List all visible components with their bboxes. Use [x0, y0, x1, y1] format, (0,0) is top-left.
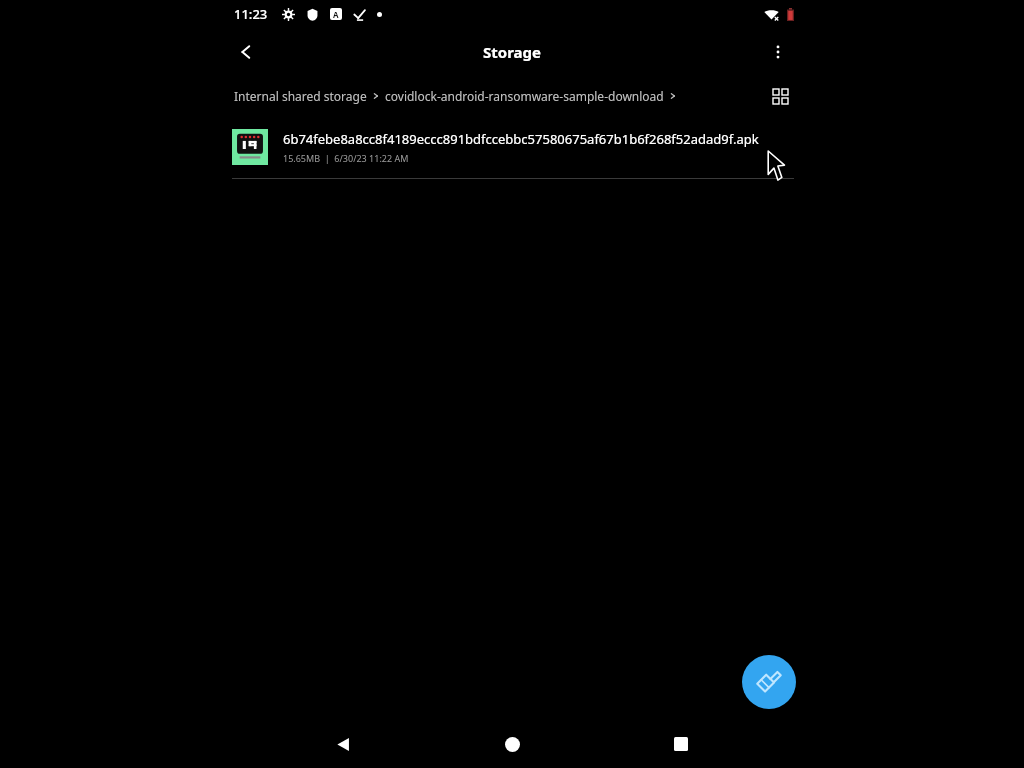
button[interactable]: 6b74febe8a8cc8f4189eccc891bdfccebbc57580… — [0, 116, 1024, 178]
button[interactable]: Home — [489, 721, 535, 767]
staticText: A — [333, 9, 339, 20]
button[interactable]: Clean storage — [742, 655, 796, 709]
button[interactable]: Back — [226, 32, 266, 72]
staticText: 11:23 — [234, 5, 268, 23]
staticText: 6b74febe8a8cc8f4189eccc891bdfccebbc57580… — [283, 130, 759, 148]
staticText: covidlock-android-ransomware-sample-down… — [385, 88, 664, 104]
button[interactable]: Grid view — [762, 78, 798, 114]
button[interactable]: Back — [320, 721, 366, 767]
button[interactable]: More options — [758, 32, 798, 72]
button[interactable]: Recent apps — [658, 721, 704, 767]
staticText: 15.65MB | 6/30/23 11:22 AM — [283, 152, 409, 164]
staticText: Internal shared storage — [234, 88, 367, 104]
button[interactable]: Internal shared storage — [234, 88, 677, 104]
staticText: Storage — [483, 42, 541, 62]
